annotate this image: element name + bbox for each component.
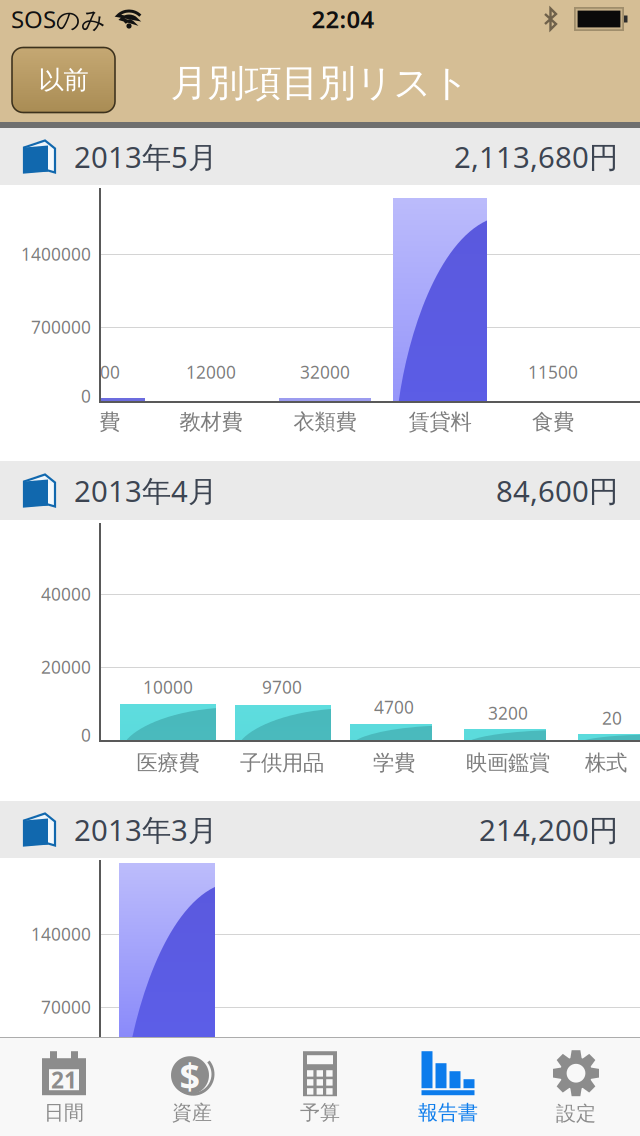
staticText: 賃貸料 (408, 409, 471, 435)
button[interactable]: 以前 (12, 47, 115, 112)
staticText: 映画鑑賞 (466, 750, 550, 776)
staticText: 衣類費 (293, 409, 356, 435)
staticText: 医療費 (136, 750, 199, 776)
staticText: 140000 (31, 922, 91, 945)
button[interactable]: $ (128, 1038, 256, 1136)
staticText: 3200 (488, 701, 528, 724)
staticText: 21 (51, 1065, 77, 1095)
staticText: 報告書 (418, 1100, 478, 1125)
staticText: 2013年3月 (74, 810, 217, 849)
staticText: 子供用品 (240, 750, 324, 776)
staticText: $ (179, 1051, 200, 1099)
button[interactable]: 21 (0, 1038, 128, 1136)
staticText: 株式 (585, 750, 627, 776)
staticText: 2,113,680円 (454, 137, 618, 176)
staticText: 費 (99, 409, 120, 435)
staticText: 9700 (262, 675, 302, 698)
button[interactable]: 報告書 (384, 1038, 512, 1136)
staticText: 日間 (44, 1100, 84, 1125)
staticText: 1400000 (21, 242, 91, 265)
staticText: 以前 (38, 64, 88, 95)
staticText: 資産 (172, 1100, 212, 1125)
staticText: 22:04 (311, 3, 374, 35)
staticText: 700000 (31, 315, 91, 338)
staticText: 70000 (41, 995, 91, 1018)
staticText: 0 (81, 384, 91, 407)
staticText: 0 (81, 723, 91, 746)
staticText: SOSのみ (11, 3, 106, 35)
staticText: 2013年4月 (74, 471, 217, 510)
button[interactable]: 予算 (256, 1038, 384, 1136)
staticText: 214,200円 (479, 810, 618, 849)
staticText: 月別項目別リスト (170, 60, 469, 106)
staticText: 11500 (528, 360, 578, 383)
staticText: 4700 (374, 695, 414, 718)
staticText: 20000 (41, 655, 91, 678)
staticText: 設定 (556, 1101, 596, 1126)
staticText: 学費 (373, 750, 415, 776)
staticText: 32000 (300, 360, 350, 383)
staticText: 12000 (186, 360, 236, 383)
staticText: 20 (602, 706, 622, 729)
button[interactable]: 設定 (512, 1038, 640, 1136)
staticText: 40000 (41, 582, 91, 605)
staticText: 食費 (532, 409, 574, 435)
staticText: 2013年5月 (74, 137, 217, 176)
staticText: 教材費 (179, 409, 242, 435)
staticText: 00 (100, 360, 120, 383)
staticText: 10000 (143, 675, 193, 698)
staticText: 84,600円 (496, 471, 618, 510)
staticText: 予算 (300, 1100, 340, 1125)
